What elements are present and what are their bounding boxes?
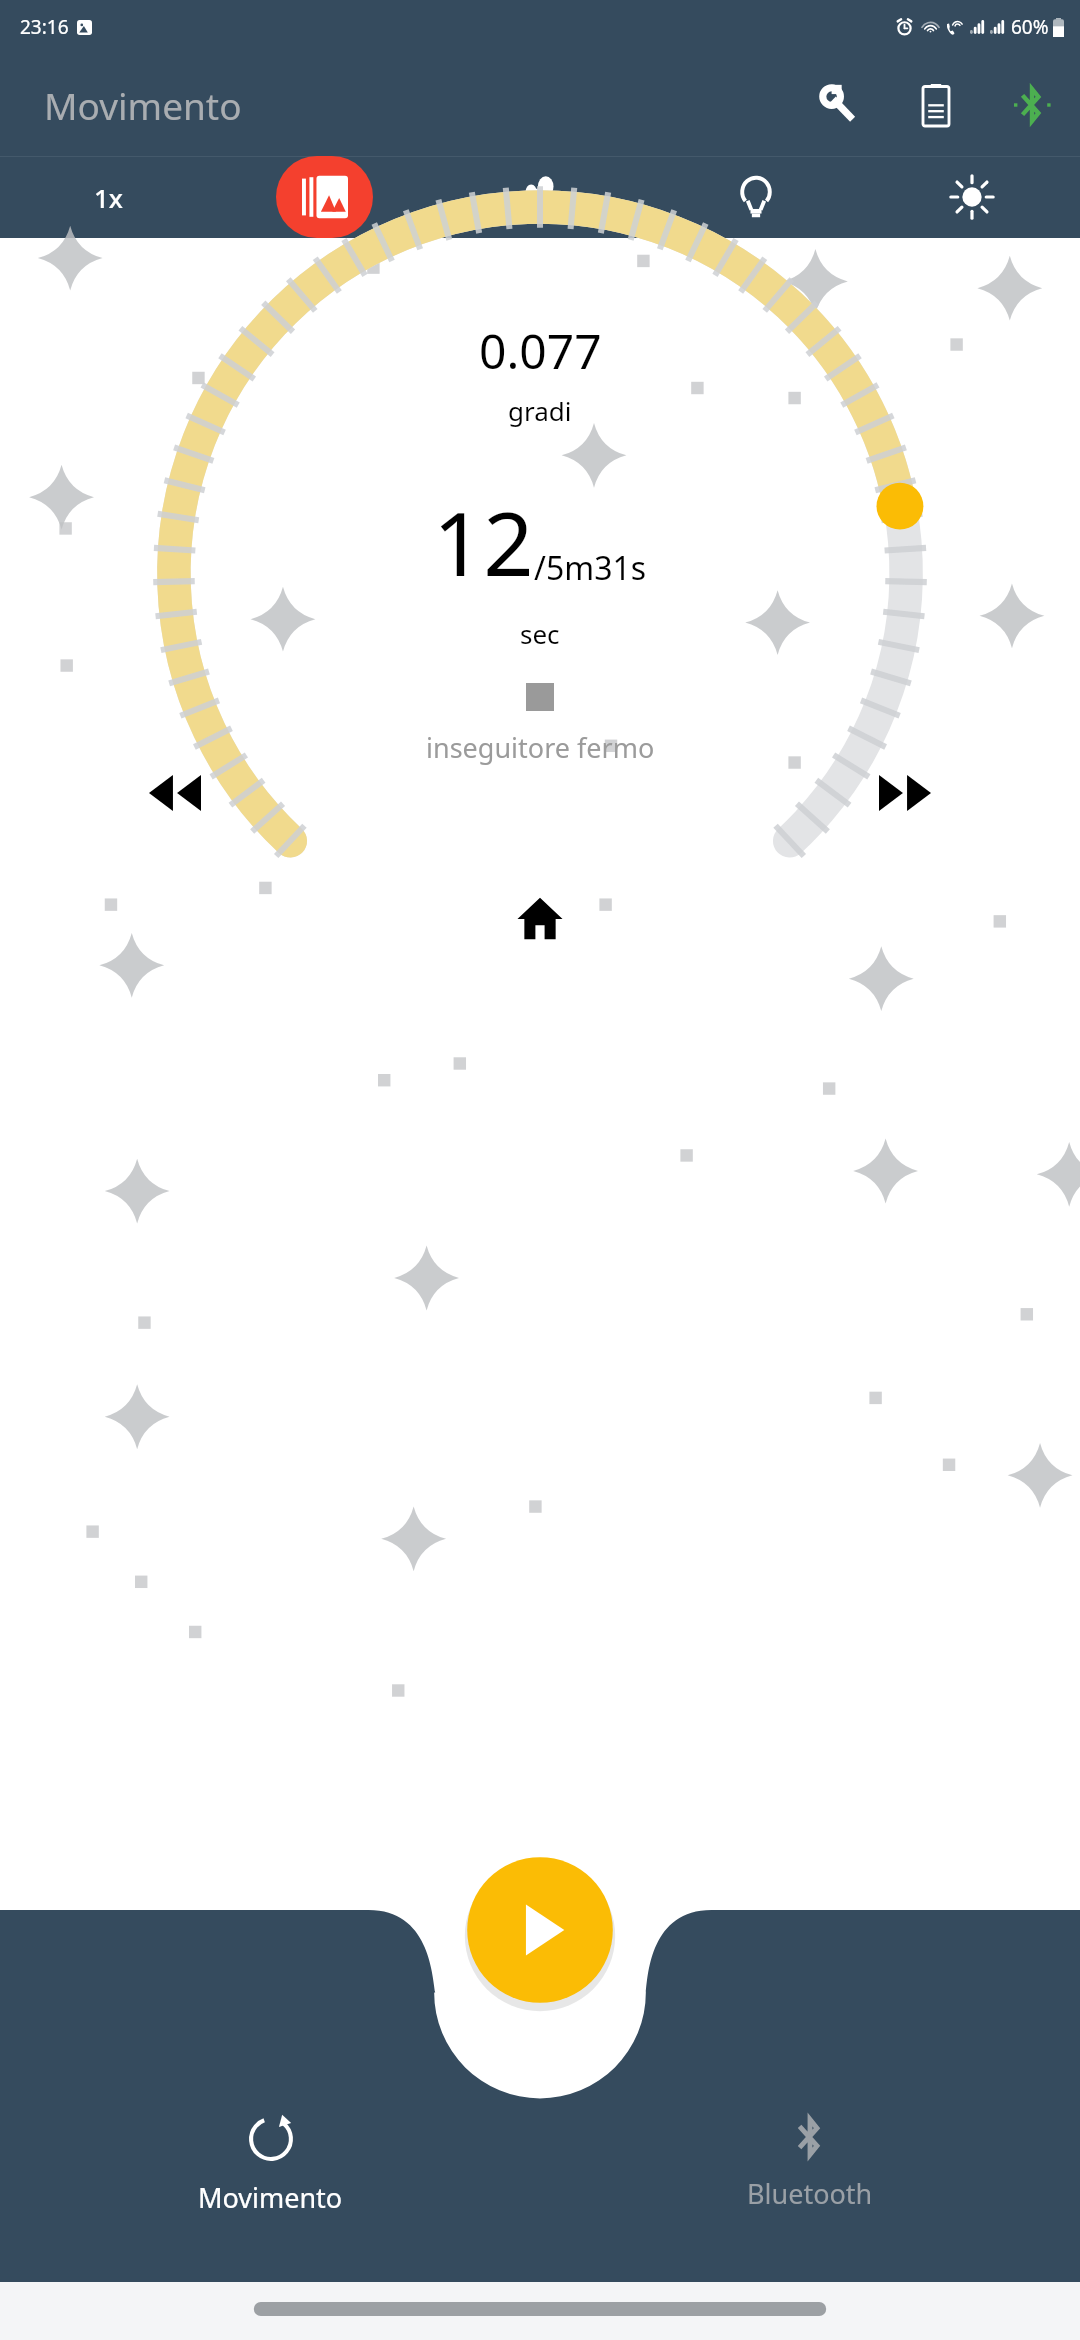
button[interactable]: Fast forward bbox=[850, 738, 960, 848]
staticText: /5m31s bbox=[534, 546, 647, 590]
staticText: 0.077 bbox=[479, 318, 602, 383]
staticText: inseguitore fermo bbox=[426, 729, 655, 766]
staticText: gradi bbox=[508, 393, 572, 428]
button[interactable]: 1x bbox=[0, 156, 216, 238]
staticText: sec bbox=[520, 616, 560, 651]
button[interactable]: Battery bbox=[888, 57, 984, 153]
button[interactable]: Rewind bbox=[120, 738, 230, 848]
staticText: Movimento bbox=[198, 2179, 343, 2216]
button[interactable]: Home bbox=[485, 863, 595, 973]
staticText: Movimento bbox=[44, 80, 242, 130]
button[interactable]: Movimento bbox=[0, 2115, 540, 2216]
button[interactable]: Play bbox=[460, 1850, 620, 2010]
button[interactable]: Bluetooth bbox=[540, 2115, 1080, 2212]
staticText: 12 bbox=[433, 482, 534, 602]
staticText: 23:16 bbox=[20, 14, 69, 40]
button[interactable]: Gallery bbox=[216, 156, 432, 238]
button[interactable]: Scenery bbox=[432, 156, 648, 238]
button[interactable]: Light bbox=[648, 156, 864, 238]
button[interactable]: Brightness bbox=[864, 156, 1080, 238]
staticText: Bluetooth bbox=[747, 2175, 873, 2212]
staticText: 60% bbox=[1011, 14, 1049, 40]
staticText: 1x bbox=[94, 180, 123, 215]
button[interactable]: Bluetooth bbox=[984, 57, 1080, 153]
button[interactable]: Settings bbox=[792, 57, 888, 153]
